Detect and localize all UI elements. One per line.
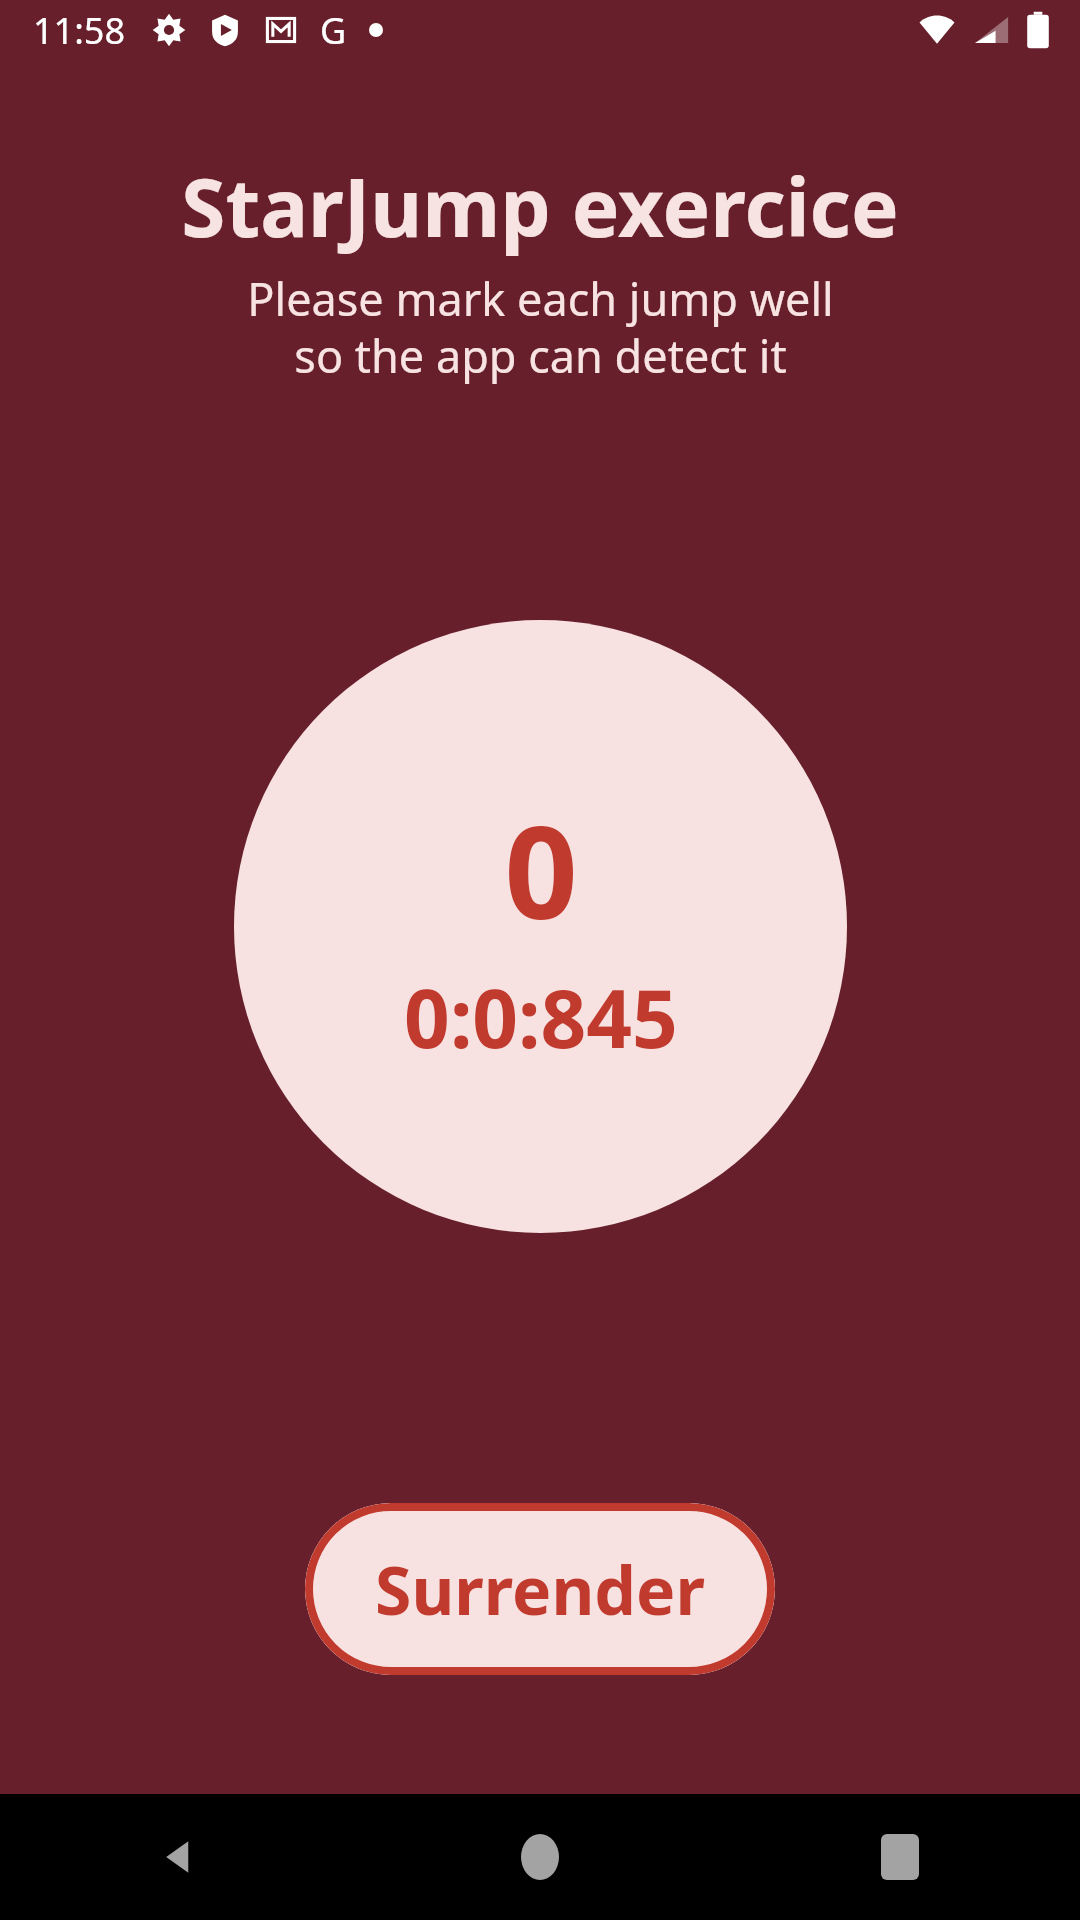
staticText: Please mark each jump well so the app ca… [247, 268, 834, 386]
button[interactable]: Home [360, 1794, 720, 1920]
staticText: Surrender [375, 1544, 705, 1634]
staticText: 0:0:845 [404, 962, 678, 1071]
staticText: 11:58 [33, 6, 126, 55]
button[interactable]: Recent apps [720, 1794, 1080, 1920]
button[interactable]: 0 [234, 620, 847, 1233]
button[interactable]: Back [0, 1794, 360, 1920]
staticText: StarJump exercice [181, 151, 899, 260]
button[interactable]: Surrender [305, 1503, 775, 1675]
staticText: 0 [504, 782, 578, 956]
staticText: G [320, 6, 347, 55]
